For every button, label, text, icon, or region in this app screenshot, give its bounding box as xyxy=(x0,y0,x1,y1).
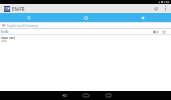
button[interactable]: History xyxy=(57,13,114,22)
staticText: salut xyxy=(1,39,7,43)
staticText: hello xyxy=(1,30,9,34)
staticText: EN/FR xyxy=(12,6,25,12)
button[interactable]: More options xyxy=(161,4,170,13)
button[interactable]: Refresh xyxy=(150,4,161,13)
button[interactable]: Favorites xyxy=(114,13,171,22)
button[interactable]: Pronounce xyxy=(150,29,159,34)
button[interactable]: Recent apps xyxy=(97,91,119,100)
button[interactable]: Home xyxy=(75,91,97,100)
staticText: noun excl. xyxy=(1,36,16,40)
button[interactable]: Back xyxy=(53,91,75,100)
button[interactable]: Search xyxy=(0,13,57,22)
button[interactable]: Add to favorites xyxy=(159,29,168,34)
staticText: English-French Dictionary xyxy=(7,24,39,28)
button[interactable]: Voice search xyxy=(1,23,6,28)
